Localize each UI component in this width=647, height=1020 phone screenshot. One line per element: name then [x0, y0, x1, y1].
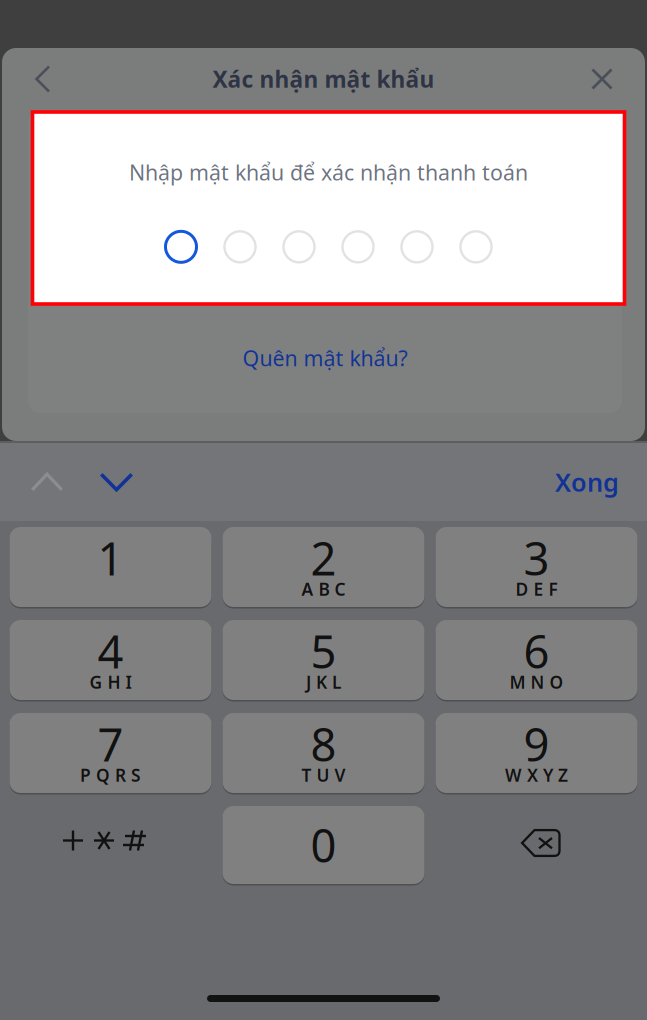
staticText: T U V	[301, 763, 345, 786]
staticText: 9	[523, 714, 549, 774]
button[interactable]: 0	[222, 806, 424, 884]
staticText: 8	[310, 714, 336, 774]
button[interactable]: 3	[435, 527, 637, 607]
staticText: P Q R S	[80, 763, 141, 786]
staticText: W X Y Z	[505, 763, 568, 786]
button[interactable]: Xong	[527, 443, 647, 521]
button[interactable]: Next field	[94, 443, 139, 521]
staticText: 2	[310, 528, 336, 588]
staticText: 4	[97, 621, 123, 681]
button[interactable]: 8	[222, 713, 424, 793]
button[interactable]: Back	[14, 48, 72, 110]
staticText: Xác nhận mật khẩu	[212, 64, 434, 94]
staticText: 1	[97, 528, 123, 588]
staticText: 6	[523, 621, 549, 681]
staticText: 0	[310, 815, 336, 875]
staticText: Quên mật khẩu?	[242, 344, 407, 372]
staticText: J K L	[306, 670, 341, 693]
staticText: 7	[97, 714, 123, 774]
staticText: 5	[310, 621, 336, 681]
button[interactable]: Previous field	[0, 443, 94, 521]
staticText: Nhập mật khẩu để xác nhận thanh toán	[129, 158, 528, 186]
button[interactable]: 2	[222, 527, 424, 607]
button[interactable]: 4	[9, 620, 211, 700]
staticText: G H I	[89, 670, 131, 693]
staticText: D E F	[515, 577, 557, 600]
button[interactable]: Quên mật khẩu?	[175, 335, 475, 381]
staticText: 3	[523, 528, 549, 588]
staticText: Xong	[555, 465, 619, 499]
button[interactable]: 6	[435, 620, 637, 700]
button[interactable]: Close	[571, 48, 633, 110]
button[interactable]: Delete	[435, 806, 637, 884]
staticText: A B C	[301, 577, 345, 600]
button[interactable]: 1	[9, 527, 211, 607]
button[interactable]: Symbols	[9, 806, 211, 884]
staticText: M N O	[509, 670, 563, 693]
button[interactable]: 9	[435, 713, 637, 793]
button[interactable]: 7	[9, 713, 211, 793]
button[interactable]: 5	[222, 620, 424, 700]
